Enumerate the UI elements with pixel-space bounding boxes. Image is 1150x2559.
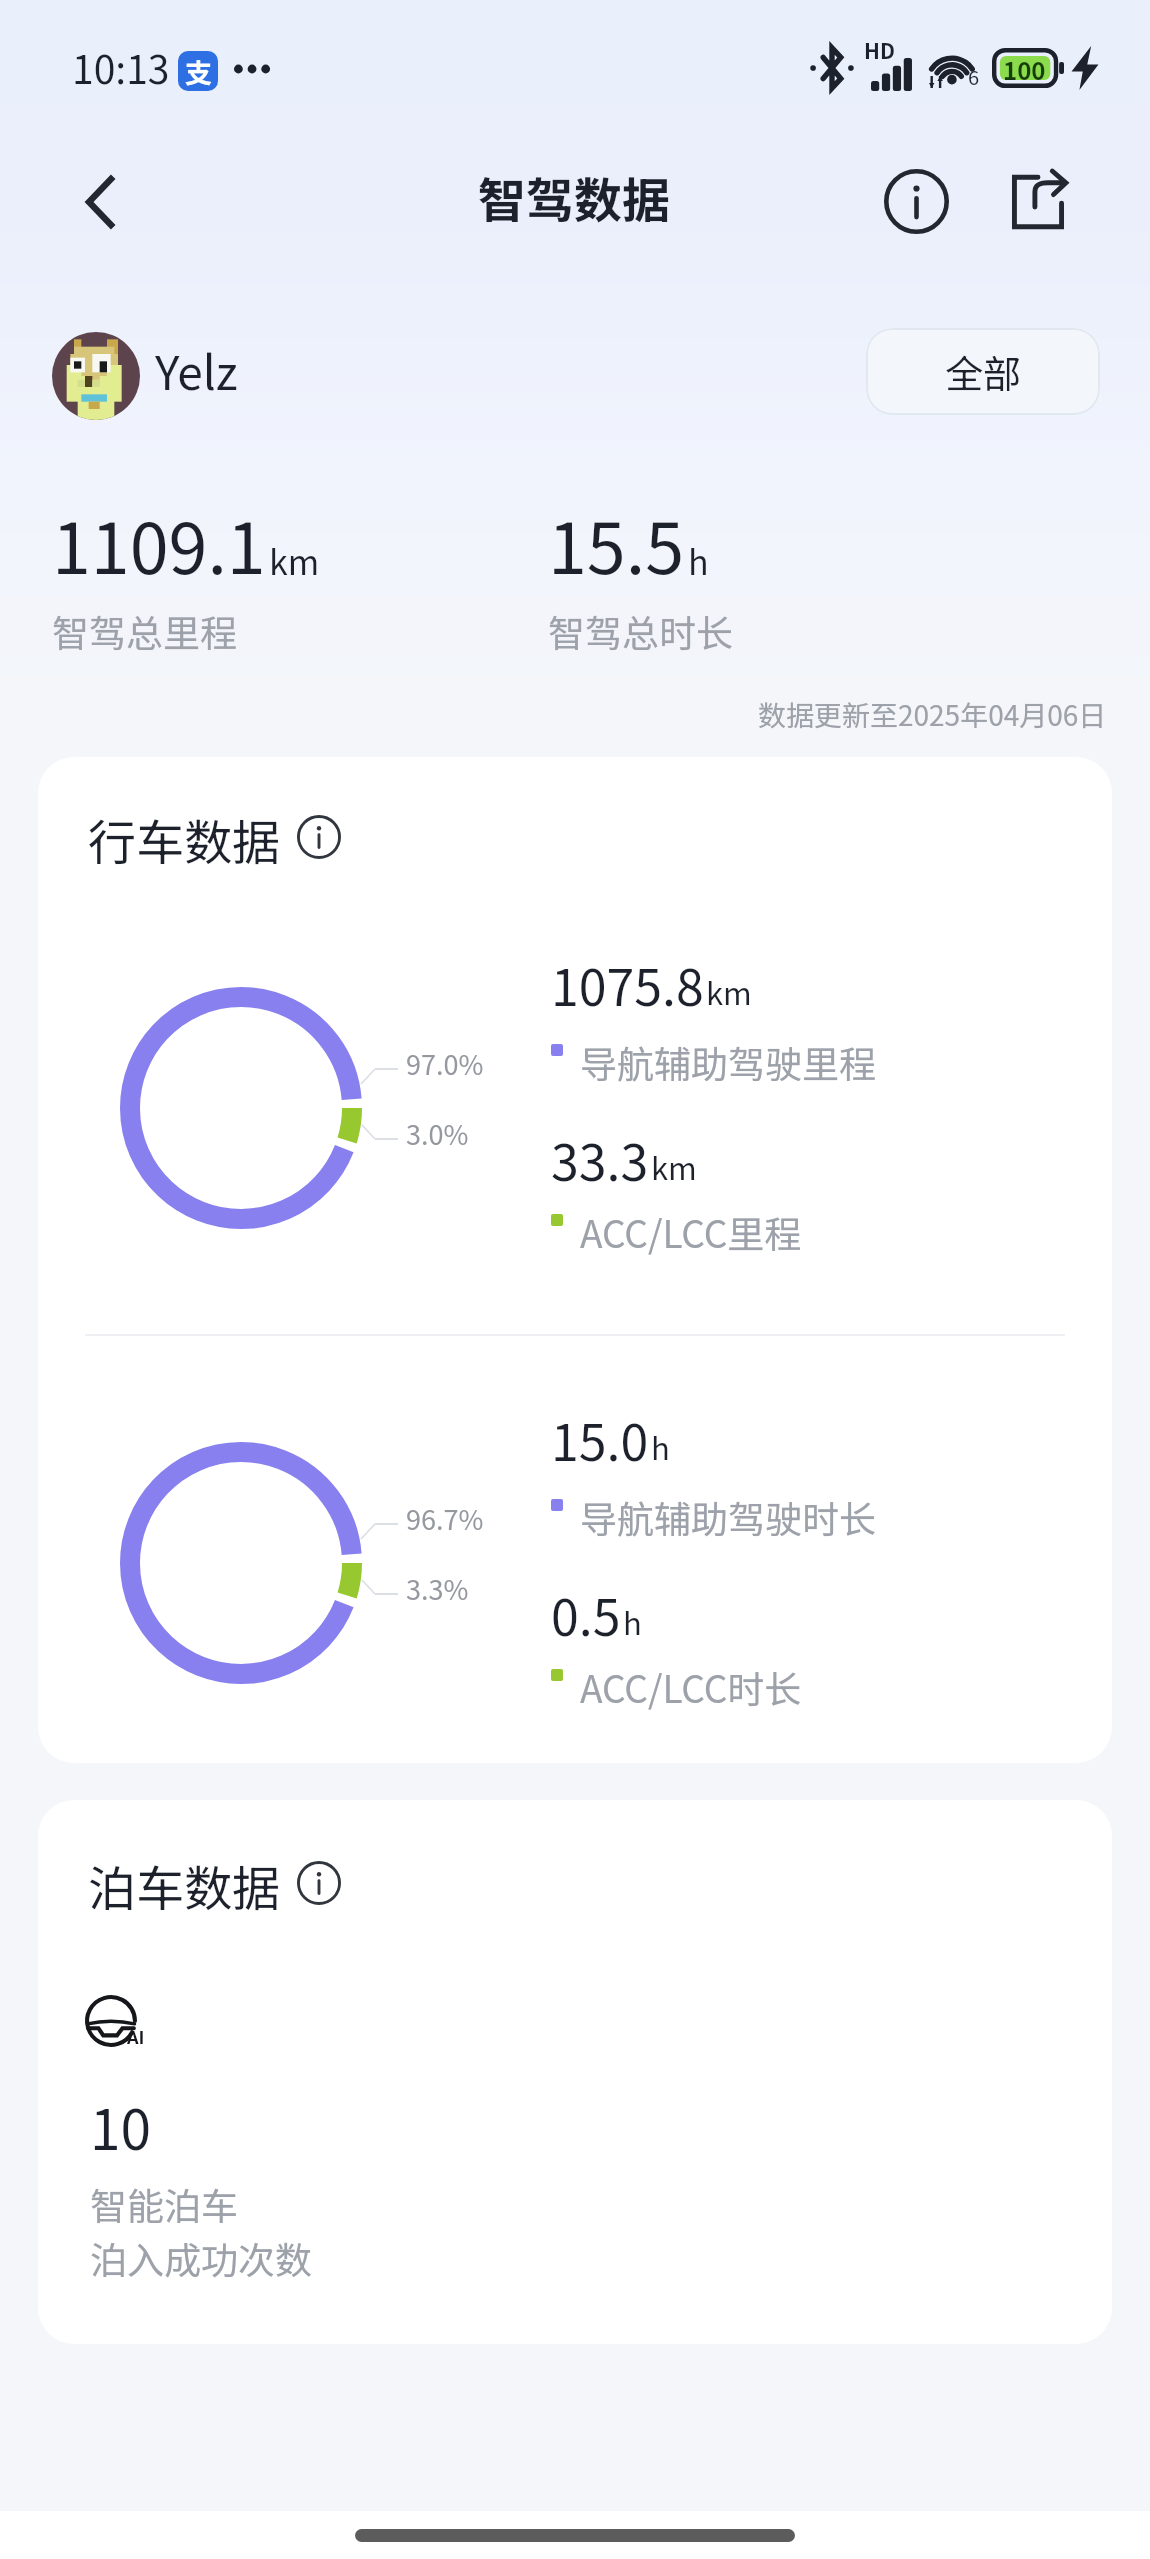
staticText: 15.0 [551,1403,649,1475]
staticText: 96.7% [406,1499,484,1538]
staticText: 0.5 [551,1578,621,1650]
staticText: ACC/LCC时长 [580,1660,802,1714]
staticText: 3.3% [406,1569,469,1608]
staticText: Yelz [155,337,238,404]
staticText: 100 [1003,52,1046,87]
button[interactable]: Profile avatar [52,332,140,420]
button[interactable]: More information [284,802,354,872]
staticText: 泊车数据 [88,1850,281,1920]
staticText: 1075.8 [551,948,704,1020]
staticText: 97.0% [406,1044,484,1083]
staticText: h [688,536,709,585]
staticText: km [269,536,320,585]
button[interactable]: Info [878,163,954,239]
staticText: 3.0% [406,1114,469,1153]
staticText: 智驾总时长 [548,604,733,658]
staticText: ACC/LCC里程 [580,1205,802,1259]
staticText: HD [864,35,895,65]
staticText: 支 [185,52,212,91]
button[interactable]: Back [62,164,138,240]
staticText: 导航辅助驾驶里程 [580,1035,876,1089]
staticText: 行车数据 [88,804,281,874]
staticText: 1109.1 [52,493,266,594]
staticText: 6 [968,62,980,91]
staticText: 15.5 [548,493,685,594]
staticText: km [706,969,752,1014]
button[interactable]: 全部 [866,328,1100,415]
staticText: 33.3 [551,1123,649,1195]
staticText: 导航辅助驾驶时长 [580,1490,876,1544]
staticText: 全部 [945,344,1022,399]
staticText: 智驾总里程 [52,604,237,658]
staticText: h [651,1424,670,1469]
staticText: 数据更新至2025年04月06日 [758,694,1107,735]
staticText: 智能泊车 泊入成功次数 [90,2177,312,2285]
button[interactable]: Share [1000,164,1076,240]
staticText: km [651,1144,697,1189]
staticText: 10:13 [72,39,170,95]
staticText: h [623,1599,642,1644]
button[interactable]: More information [284,1848,354,1918]
staticText: 智驾数据 [478,162,671,232]
staticText: AI [127,2023,145,2049]
staticText: 10 [90,2086,152,2166]
